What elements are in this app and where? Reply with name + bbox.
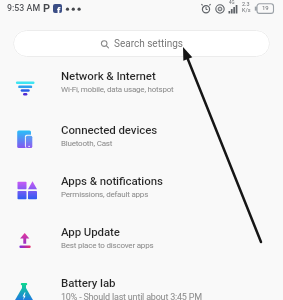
- staticText: Bluetooth, Cast: [61, 139, 113, 148]
- button[interactable]: Battery lab: [0, 266, 283, 300]
- button[interactable]: Apps & notifications: [0, 164, 283, 215]
- button[interactable]: Network & Internet: [0, 59, 283, 113]
- staticText: Permissions, default apps: [61, 190, 149, 199]
- button[interactable]: Connected devices: [0, 113, 283, 164]
- button[interactable]: App Update: [0, 215, 283, 266]
- staticText: 9:53 AM: [7, 3, 41, 13]
- staticText: P: [43, 2, 51, 15]
- staticText: Battery lab: [61, 276, 116, 289]
- staticText: 2.3: [242, 1, 250, 7]
- staticText: Wi-Fi, mobile, data usage, hotspot: [61, 85, 174, 94]
- staticText: K/s: [242, 7, 251, 13]
- staticText: 4G: [229, 0, 235, 5]
- staticText: Connected devices: [61, 123, 158, 136]
- staticText: f: [57, 6, 61, 13]
- button[interactable]: Search settings: [13, 30, 270, 57]
- staticText: App Update: [61, 225, 120, 238]
- staticText: Apps & notifications: [61, 174, 163, 187]
- staticText: Search settings: [114, 38, 183, 50]
- staticText: Best place to discover apps: [61, 241, 154, 250]
- staticText: 19: [262, 4, 269, 11]
- staticText: Network & Internet: [61, 69, 156, 82]
- staticText: 10% - Should last until about 3:45 PM: [61, 292, 202, 300]
